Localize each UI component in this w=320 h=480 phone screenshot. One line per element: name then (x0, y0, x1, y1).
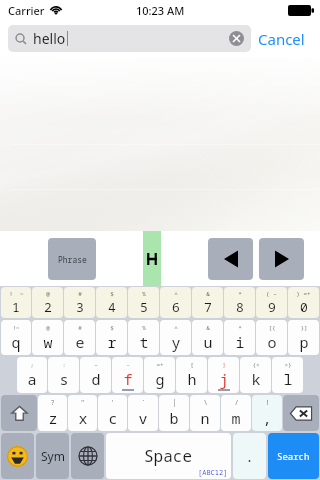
staticText: – (94, 361, 98, 369)
button[interactable]: ) =+ (288, 287, 319, 318)
button[interactable]: !~ (1, 320, 31, 355)
staticText: . (245, 446, 255, 466)
button[interactable]: ^ (160, 287, 191, 318)
staticText: 2 (44, 298, 52, 316)
staticText: h (187, 369, 197, 389)
button[interactable]: – (112, 357, 143, 393)
button[interactable]: & (192, 287, 223, 318)
staticText: , (262, 408, 272, 428)
button[interactable]: [{ (256, 320, 287, 355)
button[interactable]: % (128, 320, 159, 355)
staticText: \ (203, 398, 208, 408)
button[interactable]: Shift (1, 395, 37, 431)
staticText: : (62, 361, 66, 369)
button[interactable]: Move cursor right (259, 238, 304, 280)
staticText: # (78, 290, 82, 298)
staticText: & (206, 290, 210, 298)
staticText: 1 (12, 298, 20, 316)
staticText: {< (252, 361, 260, 369)
staticText: ( – (266, 290, 277, 298)
button[interactable]: Change keyboard language (71, 433, 104, 479)
staticText: | (172, 398, 177, 408)
button[interactable]: * (224, 320, 255, 355)
staticText: ; (30, 361, 34, 369)
staticText: 0 (300, 298, 308, 316)
staticText: " (80, 398, 85, 408)
button[interactable]: ; (17, 357, 47, 393)
staticText: ! ~ (9, 290, 24, 298)
staticText: g (155, 369, 165, 389)
button[interactable]: ^ (160, 320, 191, 355)
button[interactable]: % (128, 287, 159, 318)
button[interactable]: ] (208, 357, 239, 393)
staticText: ^ (174, 324, 178, 332)
staticText: Sym (41, 448, 65, 464)
button[interactable]: ! (252, 395, 282, 431)
staticText: 7 (204, 298, 212, 316)
button[interactable]: " (68, 395, 97, 431)
button[interactable]: {< (240, 357, 271, 393)
staticText: / (234, 398, 239, 408)
staticText: – (126, 361, 130, 369)
staticText: @ (46, 290, 50, 298)
staticText: w (43, 332, 53, 352)
staticText: 5 (140, 298, 148, 316)
button[interactable]: * (224, 287, 255, 318)
button[interactable]: Emoji (1, 433, 34, 479)
button[interactable]: $ (96, 287, 127, 318)
staticText: a (27, 369, 37, 389)
staticText: u (203, 332, 213, 352)
staticText: n (200, 408, 210, 428)
button[interactable]: ? (38, 395, 67, 431)
button[interactable]: : (48, 357, 79, 393)
staticText: $ (110, 324, 114, 332)
button[interactable]: Cancel (251, 25, 312, 53)
button[interactable]: & (192, 320, 223, 355)
staticText: t (139, 332, 149, 352)
button[interactable]: ' (98, 395, 127, 431)
staticText: [ (190, 361, 194, 369)
staticText: o (267, 332, 277, 352)
button[interactable]: ` (128, 395, 158, 431)
button[interactable]: Search (268, 433, 319, 479)
button[interactable]: hello (8, 25, 251, 52)
button[interactable]: . (233, 433, 266, 479)
button[interactable]: [ (176, 357, 207, 393)
staticText: $ (110, 290, 114, 298)
staticText: y (171, 332, 181, 352)
staticText: * (238, 324, 242, 332)
button[interactable]: Clear text (229, 31, 244, 46)
button[interactable]: / (221, 395, 251, 431)
staticText: Phrase (58, 254, 87, 265)
staticText: & (206, 324, 210, 332)
button[interactable]: $ (96, 320, 127, 355)
staticText: r (107, 332, 117, 352)
button[interactable]: ! ~ (1, 287, 31, 318)
button[interactable]: @ (32, 287, 63, 318)
button[interactable]: }] (288, 320, 319, 355)
button[interactable]: – (80, 357, 111, 393)
button[interactable]: >} (272, 357, 303, 393)
staticText: ! (265, 398, 270, 408)
button[interactable]: Space (106, 433, 231, 479)
button[interactable]: Backspace (283, 395, 319, 431)
staticText: f (123, 369, 133, 389)
button[interactable]: | (159, 395, 189, 431)
staticText: 10:23 AM (136, 3, 185, 18)
staticText: x (78, 408, 88, 428)
staticText: q (11, 332, 21, 352)
staticText: * (238, 290, 242, 298)
staticText: j (219, 369, 229, 389)
button[interactable]: =+ (144, 357, 175, 393)
button[interactable]: \ (190, 395, 220, 431)
button[interactable]: @ (32, 320, 63, 355)
staticText: c (108, 408, 118, 428)
button[interactable]: # (64, 287, 95, 318)
button[interactable]: # (64, 320, 95, 355)
button[interactable]: Sym (36, 433, 69, 479)
staticText: ' (110, 398, 115, 408)
button[interactable]: ( – (256, 287, 287, 318)
staticText: !~ (12, 324, 20, 332)
button[interactable]: Move cursor left (208, 238, 253, 280)
button[interactable]: Phrase (48, 238, 96, 280)
